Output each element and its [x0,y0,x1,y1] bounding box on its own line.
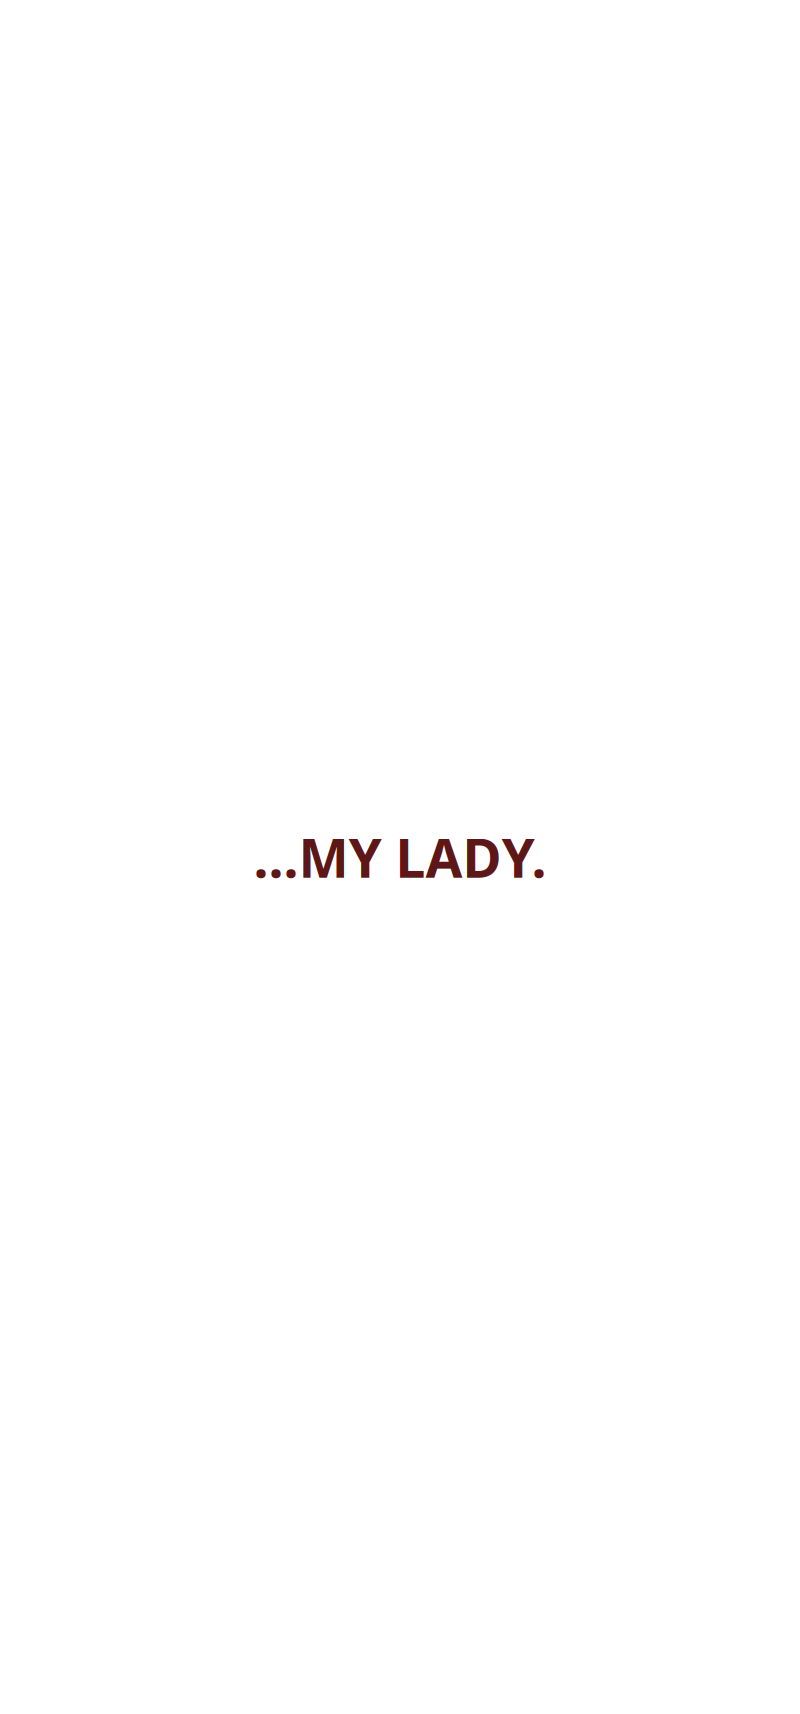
staticText: ...MY LADY. [253,822,546,892]
